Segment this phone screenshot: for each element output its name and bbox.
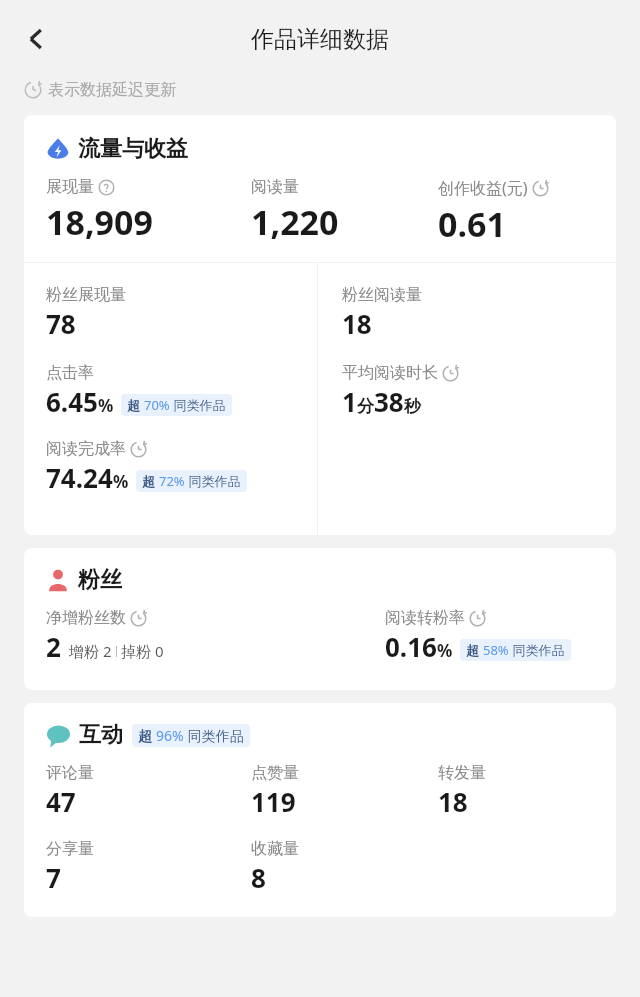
staticText: 粉丝 <box>78 566 122 594</box>
button[interactable]: 超 <box>460 639 571 661</box>
staticText: 2 <box>46 629 61 664</box>
staticText: 47 <box>46 784 76 819</box>
staticText: 119 <box>251 784 296 819</box>
staticText: 18,909 <box>46 199 153 245</box>
staticText: 18 <box>342 306 372 341</box>
staticText: 粉丝阅读量 <box>342 285 422 305</box>
staticText: 净增粉丝数 <box>46 608 126 628</box>
staticText: 超 <box>466 641 483 659</box>
staticText: 增粉 2 <box>69 641 112 661</box>
staticText: 秒 <box>404 396 421 417</box>
button[interactable]: 超 <box>136 470 247 492</box>
staticText: 阅读转粉率 <box>385 608 465 628</box>
staticText: % <box>113 470 129 493</box>
staticText: 展现量 <box>46 177 94 197</box>
staticText: 转发量 <box>438 763 486 783</box>
staticText: 收藏量 <box>251 839 299 859</box>
staticText: 点赞量 <box>251 763 299 783</box>
staticText: 分享量 <box>46 839 94 859</box>
staticText: 超 <box>127 396 144 414</box>
staticText: 表示数据延迟更新 <box>48 80 176 100</box>
staticText: 72% <box>159 472 185 490</box>
staticText: 同类作品 <box>185 472 241 490</box>
staticText: 评论量 <box>46 763 94 783</box>
staticText: 阅读完成率 <box>46 439 126 459</box>
staticText: 阅读量 <box>251 177 299 197</box>
staticText: 6.45 <box>46 384 98 419</box>
staticText: 点击率 <box>46 363 94 383</box>
staticText: % <box>437 639 453 662</box>
staticText: 流量与收益 <box>78 135 188 163</box>
staticText: 超 <box>138 726 156 745</box>
button[interactable]: 超 <box>121 394 232 416</box>
staticText: 74.24 <box>46 460 113 495</box>
staticText: 粉丝展现量 <box>46 285 126 305</box>
staticText: 0.61 <box>438 201 506 247</box>
button[interactable]: 超 <box>132 724 250 747</box>
staticText: % <box>98 394 114 417</box>
staticText: 18 <box>438 784 468 819</box>
staticText: 分 <box>357 396 374 417</box>
staticText: 超 <box>142 472 159 490</box>
staticText: 0.16 <box>385 629 437 664</box>
staticText: 同类作品 <box>509 641 565 659</box>
staticText: 7 <box>46 860 61 895</box>
staticText: 创作收益(元) <box>438 177 528 199</box>
staticText: 1 <box>342 384 357 419</box>
staticText: 96% <box>156 726 184 745</box>
staticText: 1,220 <box>251 199 339 245</box>
button[interactable]: 返回 <box>8 11 64 67</box>
staticText: 掉粉 0 <box>121 641 164 661</box>
staticText: 同类作品 <box>170 396 226 414</box>
staticText: 互动 <box>79 721 123 749</box>
staticText: 78 <box>46 306 76 341</box>
staticText: 38 <box>374 384 404 419</box>
staticText: 8 <box>251 860 266 895</box>
staticText: 作品详细数据 <box>251 25 389 54</box>
staticText: 同类作品 <box>184 726 244 745</box>
staticText: 70% <box>144 396 170 414</box>
staticText: 58% <box>483 641 509 659</box>
staticText: 平均阅读时长 <box>342 363 438 383</box>
